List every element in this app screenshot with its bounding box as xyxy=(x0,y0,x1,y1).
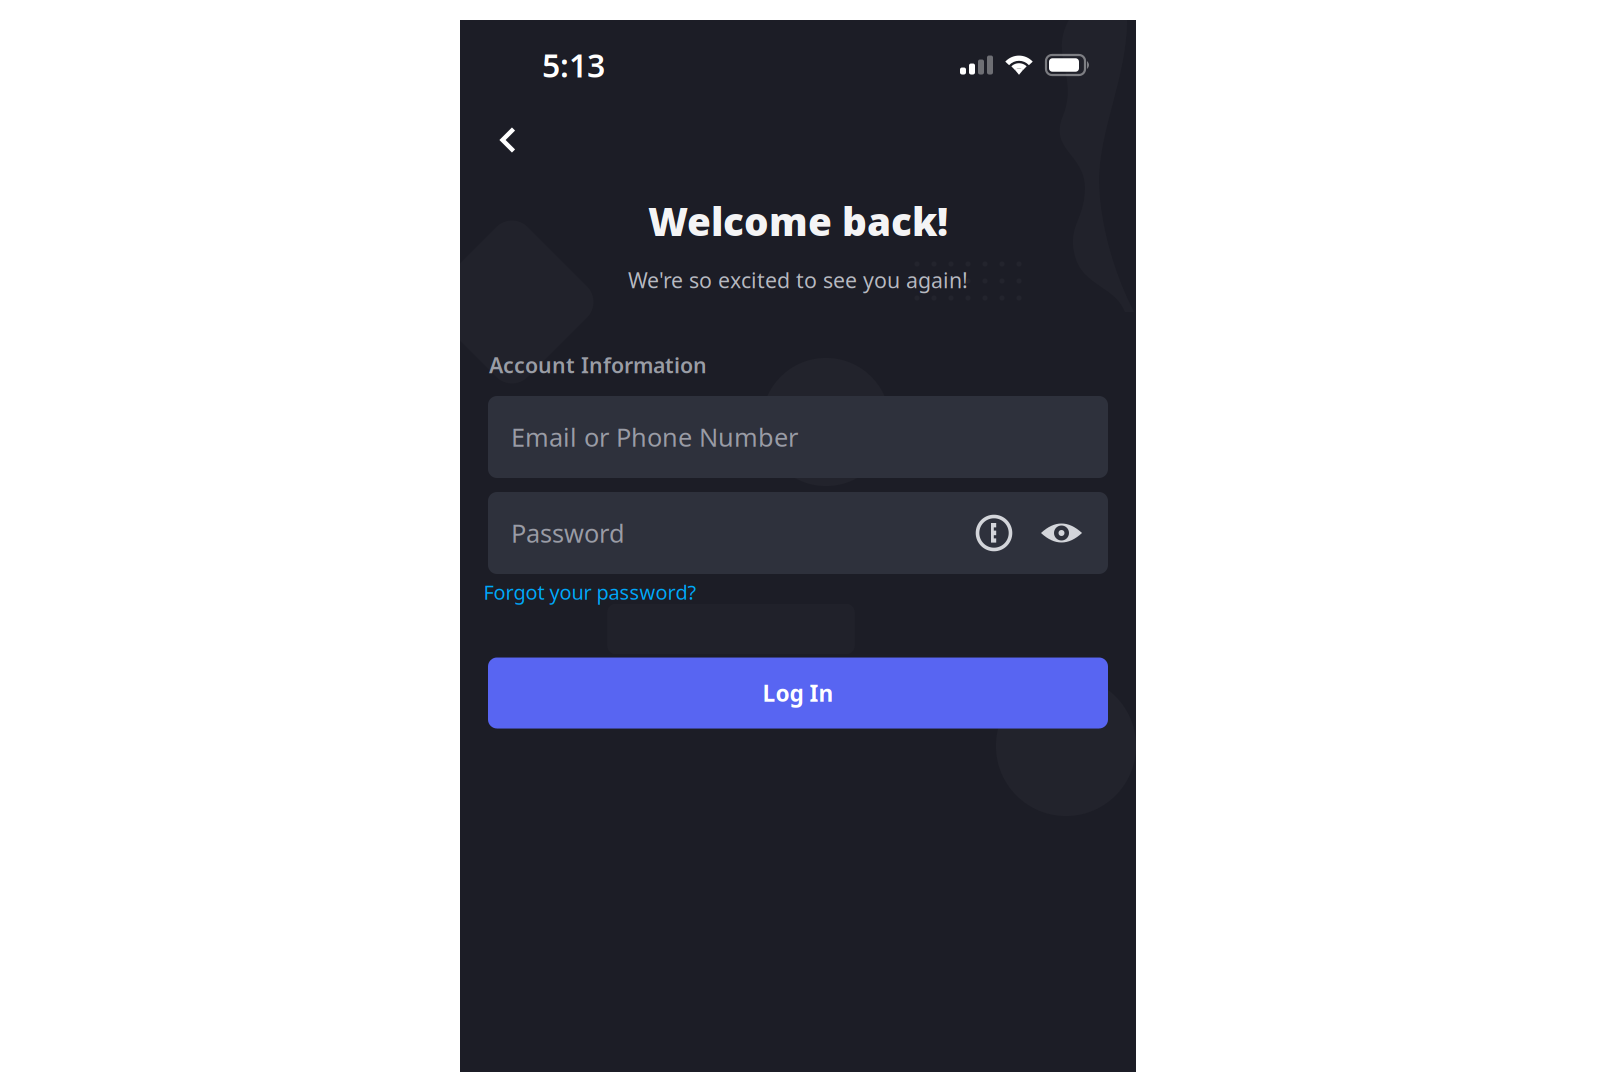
button[interactable]: Forgot your password? xyxy=(481,571,698,613)
staticText: We're so excited to see you again! xyxy=(628,266,968,294)
staticText: Log In xyxy=(762,678,833,708)
button[interactable]: Back xyxy=(480,112,536,168)
button[interactable]: Autofill password xyxy=(974,513,1014,553)
staticText: Email or Phone Number xyxy=(511,420,798,454)
button[interactable]: Log In xyxy=(488,657,1108,728)
staticText: 5:13 xyxy=(542,44,605,86)
staticText: Password xyxy=(511,516,625,550)
staticText: Welcome back! xyxy=(648,195,948,247)
staticText: Account Information xyxy=(489,351,707,379)
staticText: Forgot your password? xyxy=(483,579,696,605)
button[interactable]: Show password xyxy=(1041,519,1082,547)
